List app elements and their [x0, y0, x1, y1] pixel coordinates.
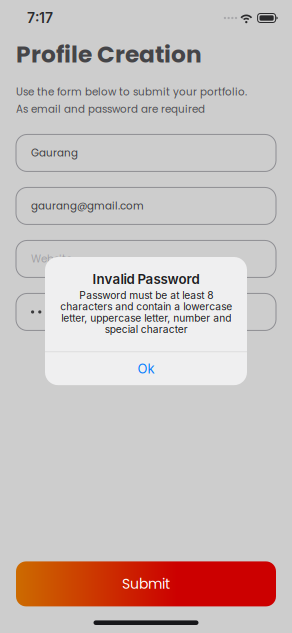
button[interactable]: Email — [16, 187, 276, 224]
staticText: Website — [31, 252, 72, 266]
button[interactable]: Website — [16, 240, 276, 277]
staticText: Use the form below to submit your portfo… — [16, 85, 247, 99]
staticText: Invalid Password — [92, 271, 199, 287]
staticText: Submit — [122, 574, 170, 594]
button[interactable]: Submit — [16, 561, 276, 606]
staticText: Password must be at least 8 characters a… — [60, 289, 232, 335]
staticText: 7:17 — [27, 9, 53, 26]
button[interactable]: Name — [16, 134, 276, 171]
button[interactable]: Password — [16, 293, 276, 330]
staticText: Profile Creation — [16, 38, 202, 71]
staticText: Ok — [137, 361, 154, 376]
staticText: As email and password are required — [16, 102, 205, 116]
button[interactable]: Ok — [45, 352, 247, 385]
staticText: Gaurang — [31, 146, 78, 160]
staticText: gaurang@gmail.com — [31, 199, 144, 213]
